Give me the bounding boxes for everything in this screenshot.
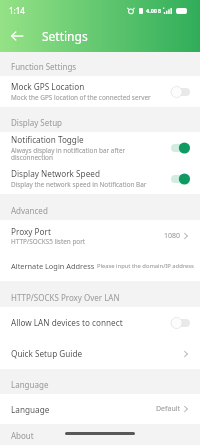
staticText: Notification Toggle <box>11 134 84 145</box>
staticText: 4.00 <box>146 7 157 14</box>
staticText: Default <box>156 404 181 414</box>
staticText: Advanced <box>11 205 48 216</box>
button[interactable]: Language <box>0 394 200 424</box>
button[interactable]: Alternate Login Address <box>0 251 200 281</box>
staticText: Display the network speed in Notificatio… <box>11 180 147 189</box>
staticText: Quick Setup Guide <box>11 348 83 359</box>
staticText: Language <box>11 404 50 415</box>
button[interactable]: Mock GPS Location <box>0 76 200 107</box>
staticText: Mock the GPS location of the connected s… <box>11 93 151 102</box>
staticText: 1:14 <box>9 5 25 16</box>
button[interactable]: Quick Setup Guide <box>0 338 200 369</box>
staticText: Function Settings <box>11 61 77 72</box>
staticText: Please input the domain/IP address <box>97 262 194 270</box>
staticText: Alternate Login Address <box>11 261 95 271</box>
staticText: B <box>158 8 161 14</box>
staticText: Allow LAN devices to connect <box>11 317 123 328</box>
button[interactable]: Back <box>0 20 34 52</box>
staticText: Language <box>11 379 49 390</box>
staticText: Always display in notification bar after… <box>11 146 165 162</box>
button[interactable]: Display Network Speed <box>0 163 200 194</box>
staticText: Display Setup <box>11 117 63 128</box>
button[interactable]: Proxy Port <box>0 220 200 251</box>
staticText: HTTP/SOCKS Proxy Over LAN <box>11 292 120 303</box>
staticText: About <box>11 430 34 441</box>
staticText: Settings <box>42 28 88 44</box>
staticText: Proxy Port <box>11 226 51 237</box>
staticText: Display Network Speed <box>11 168 100 179</box>
staticText: 1080 <box>164 231 181 241</box>
button[interactable]: Notification Toggle <box>0 132 200 163</box>
staticText: HTTP/SOCKS5 listen port <box>11 237 86 246</box>
staticText: Mock GPS Location <box>11 81 85 92</box>
button[interactable]: Allow LAN devices to connect <box>0 307 200 338</box>
